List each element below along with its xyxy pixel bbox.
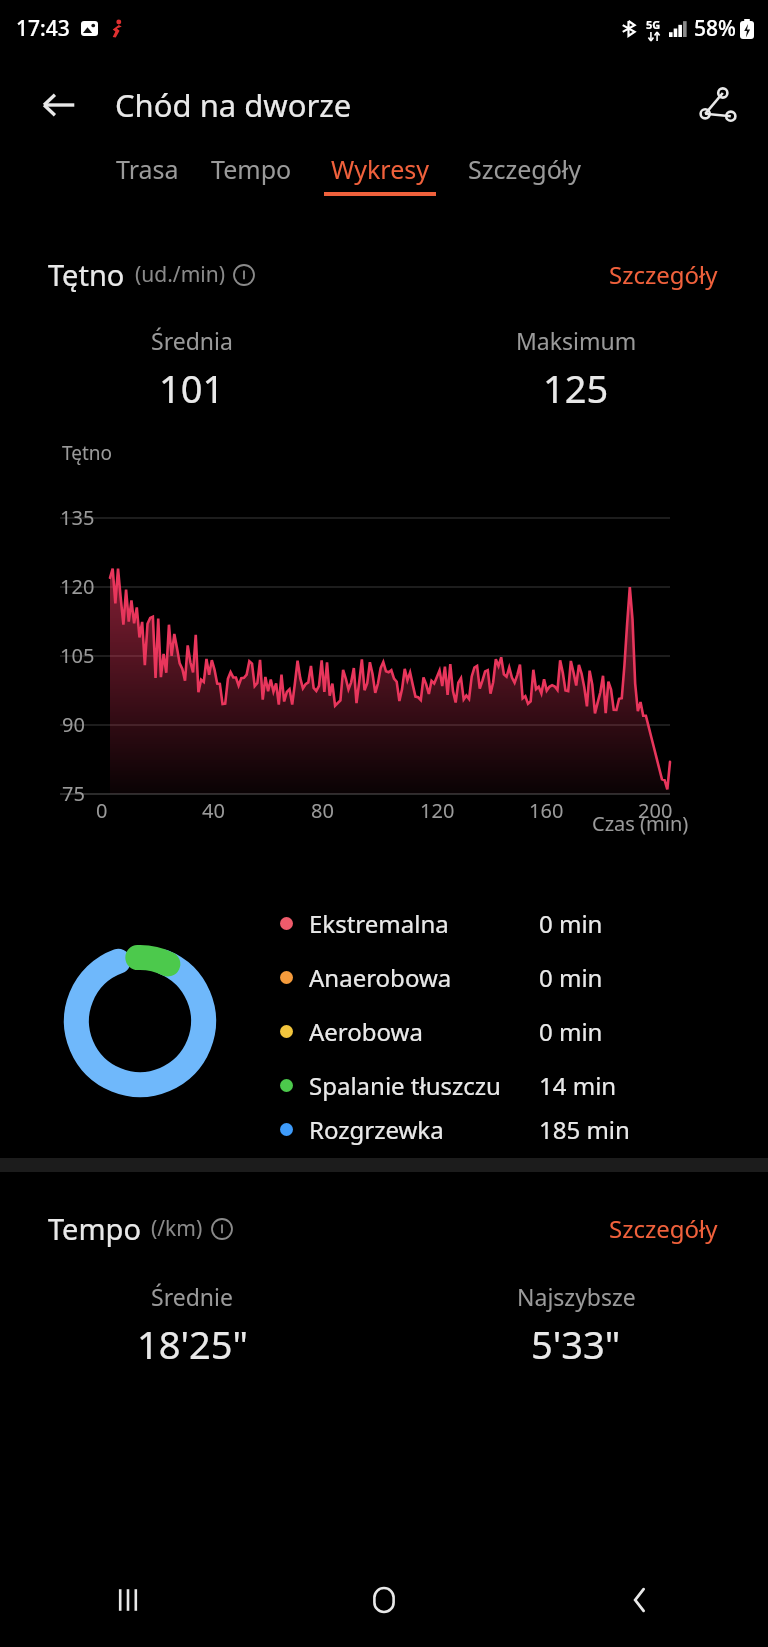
staticText: Anaerobowa: [309, 961, 539, 994]
staticText: (/km): [151, 1214, 203, 1243]
staticText: 90: [62, 711, 85, 738]
staticText: 0 min: [539, 1015, 603, 1048]
staticText: 135: [60, 504, 95, 531]
staticText: 0 min: [539, 907, 603, 940]
staticText: 185 min: [539, 1113, 630, 1146]
staticText: Wykresy: [331, 152, 430, 186]
staticText: 40: [202, 797, 225, 824]
staticText: 75: [62, 780, 85, 807]
staticText: 200: [638, 797, 673, 824]
staticText: 14 min: [539, 1069, 617, 1102]
staticText: Szczegóły: [468, 152, 582, 186]
staticText: Tempo: [211, 152, 292, 186]
staticText: 0 min: [539, 961, 603, 994]
staticText: 17:43: [16, 14, 70, 43]
button[interactable]: Szczegóły: [607, 1206, 720, 1251]
staticText: Czas (min): [592, 810, 689, 837]
staticText: 80: [311, 797, 334, 824]
staticText: 58%: [694, 14, 736, 43]
staticText: Szczegóły: [609, 258, 718, 291]
staticText: 101: [159, 362, 225, 414]
staticText: Ekstremalna: [309, 907, 539, 940]
staticText: 5'33": [531, 1318, 621, 1370]
button[interactable]: Szczegóły: [607, 252, 720, 297]
staticText: 125: [543, 362, 609, 414]
staticText: 120: [420, 797, 455, 824]
staticText: Średnia: [151, 325, 233, 356]
staticText: Rozgrzewka: [309, 1113, 539, 1146]
button[interactable]: Tempo: [195, 152, 308, 192]
button[interactable]: Szczegóły: [452, 152, 598, 192]
button[interactable]: Home: [256, 1552, 512, 1647]
button[interactable]: Share: [686, 77, 742, 133]
staticText: Tętno: [48, 255, 125, 294]
staticText: Najszybsze: [517, 1281, 636, 1312]
staticText: 18'25": [137, 1318, 248, 1370]
button[interactable]: Back: [32, 78, 86, 132]
staticText: 5G: [646, 17, 661, 32]
staticText: Maksimum: [516, 325, 637, 356]
staticText: Chód na dworze: [115, 84, 352, 126]
staticText: Tempo: [48, 1209, 141, 1248]
staticText: Szczegóły: [609, 1212, 718, 1245]
button[interactable]: Recent apps: [0, 1552, 256, 1647]
button[interactable]: Trasa: [100, 152, 195, 192]
staticText: Spalanie tłuszczu: [309, 1069, 539, 1102]
staticText: Średnie: [151, 1281, 233, 1312]
staticText: Trasa: [116, 152, 179, 186]
staticText: Tętno: [62, 440, 113, 466]
button[interactable]: Back: [512, 1552, 768, 1647]
button[interactable]: Wykresy: [308, 152, 452, 196]
staticText: 105: [60, 642, 95, 669]
staticText: (ud./min): [135, 260, 225, 289]
staticText: 0: [96, 797, 108, 824]
staticText: Aerobowa: [309, 1015, 539, 1048]
staticText: 160: [529, 797, 564, 824]
staticText: 120: [60, 573, 95, 600]
